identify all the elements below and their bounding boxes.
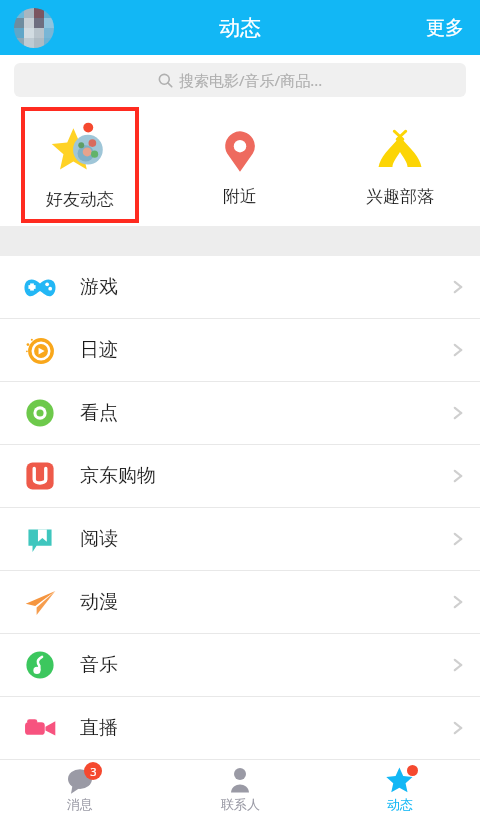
- button[interactable]: 附近: [160, 104, 320, 226]
- staticText: 好友动态: [46, 189, 114, 210]
- button[interactable]: 动漫: [0, 571, 480, 633]
- button[interactable]: Profile: [14, 8, 54, 48]
- button[interactable]: 兴趣部落: [320, 104, 480, 226]
- staticText: 动漫: [80, 590, 118, 614]
- staticText: 消息: [67, 796, 93, 812]
- button[interactable]: 京东购物: [0, 445, 480, 507]
- staticText: 日迹: [80, 338, 118, 362]
- button[interactable]: 阅读: [0, 508, 480, 570]
- staticText: 搜索电影/音乐/商品...: [179, 70, 323, 90]
- button[interactable]: 游戏: [0, 256, 480, 318]
- button[interactable]: 看点: [0, 382, 480, 444]
- staticText: 音乐: [80, 653, 118, 677]
- button[interactable]: 直播: [0, 697, 480, 759]
- staticText: 动态: [387, 796, 413, 812]
- staticText: 更多: [426, 16, 464, 40]
- staticText: 附近: [223, 186, 257, 207]
- staticText: 游戏: [80, 275, 118, 299]
- staticText: 看点: [80, 401, 118, 425]
- staticText: 3: [90, 764, 97, 779]
- staticText: 联系人: [221, 796, 260, 812]
- button[interactable]: 搜索电影/音乐/商品...: [14, 63, 466, 97]
- staticText: 动态: [219, 15, 261, 41]
- button[interactable]: 更多: [410, 6, 480, 50]
- button[interactable]: 日迹: [0, 319, 480, 381]
- staticText: 阅读: [80, 527, 118, 551]
- button[interactable]: 动态: [320, 760, 480, 816]
- staticText: 直播: [80, 716, 118, 740]
- button[interactable]: 音乐: [0, 634, 480, 696]
- button[interactable]: 联系人: [160, 760, 320, 816]
- button[interactable]: 好友动态: [25, 111, 135, 219]
- button[interactable]: 3: [0, 760, 160, 816]
- staticText: 京东购物: [80, 464, 156, 488]
- staticText: 兴趣部落: [366, 186, 434, 207]
